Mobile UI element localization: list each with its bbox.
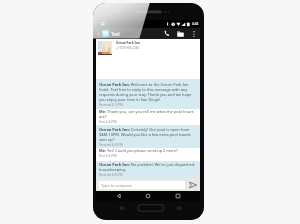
button[interactable]: Ocean Park Inn: Certainly! Our pool is o… — [96, 125, 200, 148]
button[interactable]: Ocean Park Inn: No problem! We've just d… — [96, 161, 200, 178]
staticText: Sent 4:42 PM — [99, 120, 117, 124]
staticText: Ocean Park Inn — [116, 41, 140, 45]
staticText: Me: Yes! Could you please send up 2 more… — [99, 148, 178, 153]
staticText: Text — [111, 31, 120, 37]
staticText: Ocean Park Inn: No problem! We've just d… — [99, 162, 197, 172]
staticText: Me: Thank you, can you tell me what the … — [99, 109, 197, 119]
staticText: Type to compose — [101, 183, 133, 188]
button[interactable]: Back — [112, 191, 126, 201]
staticText: Sent 4:43 PM — [99, 154, 117, 158]
button[interactable]: Ocean Park Inn — [96, 39, 200, 57]
staticText: 4:43 — [192, 22, 199, 26]
staticText: Received 4:43 PM — [99, 143, 123, 147]
button[interactable]: Type to compose — [99, 181, 185, 189]
staticText: Received 4:43 PM — [99, 173, 123, 177]
button[interactable]: Me: Yes! Could you please send up 2 more… — [96, 148, 200, 161]
button[interactable]: Archive — [175, 28, 189, 39]
staticText: Ocean Park Inn: Certainly! Our pool is o… — [99, 127, 197, 142]
button[interactable]: Ocean Park Inn: Welcome to the Ocean Par… — [96, 79, 200, 109]
staticText: Received 4:13 PM — [99, 103, 123, 107]
button[interactable]: More options — [189, 28, 198, 39]
button[interactable]: Call — [159, 28, 175, 39]
button[interactable]: Back — [96, 28, 102, 39]
button[interactable]: Me: Thank you, can you tell me what the … — [96, 109, 200, 125]
staticText: +1 (619) 555-1234 — [116, 46, 139, 50]
staticText: Ocean Park Inn: Welcome to the Ocean Par… — [99, 82, 197, 102]
button[interactable]: Recent apps — [171, 191, 185, 201]
button[interactable]: Send — [188, 180, 197, 189]
button[interactable]: Home — [141, 191, 155, 201]
